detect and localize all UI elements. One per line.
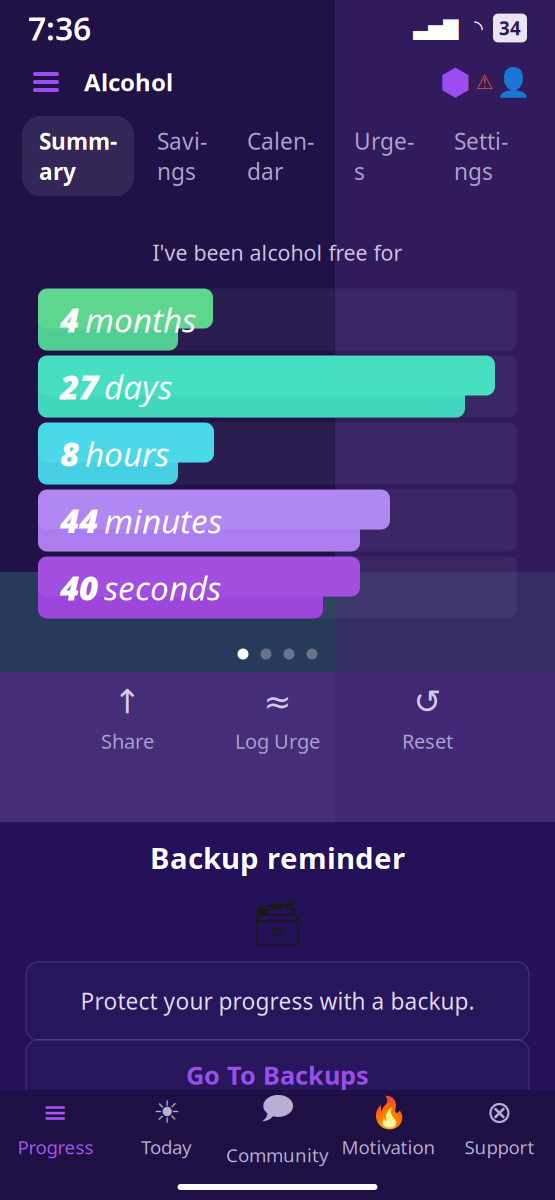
staticText: 🗩 bbox=[260, 1087, 294, 1137]
button[interactable]: 🗩 bbox=[222, 1096, 333, 1158]
button[interactable]: Calendar bbox=[230, 116, 331, 196]
button[interactable]: Settings bbox=[437, 116, 525, 196]
staticText: Protect your progress with a backup. bbox=[80, 986, 474, 1016]
staticText: Calendar bbox=[247, 126, 314, 186]
staticText: Go To Backups bbox=[186, 1058, 369, 1092]
button[interactable]: Go To Backups bbox=[26, 1040, 529, 1110]
button[interactable]: ↺ bbox=[367, 683, 487, 753]
staticText: I've been alcohol free for bbox=[152, 238, 402, 266]
staticText: 34 bbox=[499, 16, 521, 40]
staticText: ⊗ bbox=[486, 1095, 512, 1129]
staticText: Urges bbox=[354, 126, 414, 186]
staticText: Community bbox=[226, 1142, 329, 1167]
staticText: ☀ bbox=[153, 1095, 180, 1129]
button[interactable]: Rewards bbox=[435, 62, 475, 102]
staticText: days bbox=[104, 364, 172, 409]
button[interactable]: ≈ bbox=[217, 683, 337, 753]
staticText: months bbox=[85, 297, 196, 342]
staticText: ↺ bbox=[413, 683, 441, 721]
staticText: 44 bbox=[60, 498, 98, 543]
staticText: ↑ bbox=[113, 683, 141, 721]
staticText: 👤 bbox=[495, 66, 530, 98]
staticText: Log Urge bbox=[235, 728, 320, 754]
staticText: 🗃 bbox=[250, 899, 304, 948]
staticText: 8 bbox=[60, 431, 79, 476]
staticText: Settings bbox=[454, 126, 508, 186]
staticText: Motivation bbox=[341, 1135, 435, 1159]
button[interactable]: Urges bbox=[337, 116, 431, 196]
button[interactable]: 🔥 bbox=[333, 1096, 444, 1158]
button[interactable]: ⊗ bbox=[444, 1096, 555, 1158]
staticText: 7:36 bbox=[28, 7, 91, 49]
button[interactable]: Summary bbox=[22, 116, 134, 196]
staticText: Alcohol bbox=[84, 66, 173, 98]
button[interactable]: ≡ bbox=[0, 1096, 111, 1158]
staticText: Support bbox=[464, 1134, 534, 1159]
button[interactable]: ☀ bbox=[111, 1096, 222, 1158]
button[interactable]: Menu bbox=[24, 62, 68, 102]
staticText: Backup reminder bbox=[150, 838, 405, 877]
staticText: 40 bbox=[60, 565, 98, 610]
staticText: ⬢ bbox=[439, 62, 470, 102]
staticText: Progress bbox=[17, 1134, 93, 1159]
staticText: 27 bbox=[60, 364, 98, 409]
staticText: ≡ bbox=[42, 1095, 68, 1129]
staticText: 4 bbox=[60, 297, 79, 342]
button[interactable]: ↑ bbox=[67, 683, 187, 753]
staticText: 🔥 bbox=[369, 1095, 407, 1130]
staticText: ≈ bbox=[263, 683, 291, 721]
staticText: hours bbox=[85, 431, 169, 476]
button[interactable]: Account bbox=[475, 62, 531, 102]
staticText: Reset bbox=[402, 728, 453, 754]
staticText: Share bbox=[101, 728, 154, 754]
staticText: ◝ bbox=[458, 15, 483, 41]
staticText: Summary bbox=[39, 126, 117, 186]
staticText: ▃▅▇ bbox=[413, 17, 458, 39]
staticText: seconds bbox=[104, 565, 221, 610]
staticText: ⚠ bbox=[475, 71, 493, 93]
button[interactable]: Savings bbox=[140, 116, 224, 196]
staticText: Today bbox=[141, 1134, 192, 1159]
staticText: Savings bbox=[157, 126, 207, 186]
staticText: minutes bbox=[104, 498, 222, 543]
